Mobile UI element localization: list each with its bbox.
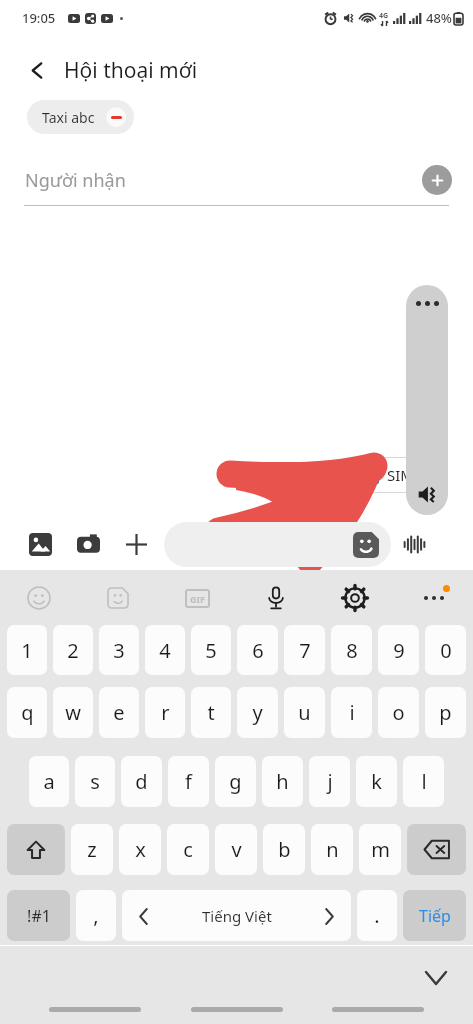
staticText: m (371, 836, 390, 863)
button[interactable]: l (403, 756, 444, 807)
staticText: 2 (67, 637, 79, 664)
staticText: e (113, 699, 125, 726)
button[interactable]: Edge panel (406, 285, 448, 515)
staticText: c (183, 836, 193, 863)
button[interactable]: Voice input (259, 581, 293, 615)
button[interactable]: Camera (70, 526, 106, 562)
button[interactable]: 5 (191, 625, 231, 675)
button[interactable]: e (99, 687, 139, 738)
button[interactable]: u (284, 687, 325, 738)
button[interactable]: 3 (99, 625, 139, 675)
staticText: 7 (299, 637, 311, 664)
staticText: t (207, 699, 215, 726)
button[interactable]: v (215, 824, 257, 875)
button[interactable]: Voice message (397, 527, 431, 561)
button[interactable]: j (309, 756, 350, 807)
staticText: v (231, 836, 242, 863)
staticText: Tiếng Việt (202, 906, 272, 926)
staticText: 19:05 (22, 9, 56, 27)
button[interactable]: Tiếp (403, 890, 466, 941)
staticText: 48% (426, 9, 452, 27)
staticText: i (349, 699, 355, 726)
button[interactable]: x (119, 824, 161, 875)
button[interactable]: a (29, 756, 69, 807)
button[interactable]: Hide keyboard (419, 961, 453, 995)
staticText: 4G (379, 11, 389, 21)
button[interactable]: p (425, 687, 466, 738)
button[interactable]: Keyboard settings (338, 581, 372, 615)
button[interactable]: r (145, 687, 185, 738)
button[interactable]: g (215, 756, 256, 807)
staticText: Tiếp (419, 905, 451, 927)
button[interactable] (191, 1007, 283, 1012)
button[interactable]: 6 (237, 625, 278, 675)
button[interactable]: q (7, 687, 47, 738)
button[interactable]: m (359, 824, 401, 875)
staticText: 8 (346, 637, 358, 664)
button[interactable]: s (75, 756, 115, 807)
staticText: h (276, 768, 289, 795)
staticText: , (93, 902, 99, 929)
staticText: !#1 (27, 905, 51, 927)
button[interactable]: , (76, 890, 116, 941)
button[interactable]: . (357, 890, 397, 941)
button[interactable]: i (331, 687, 372, 738)
button[interactable]: 9 (378, 625, 419, 675)
staticText: r (161, 699, 170, 726)
button[interactable] (407, 824, 466, 875)
staticText: 5 (205, 637, 217, 664)
button[interactable]: b (263, 824, 305, 875)
button[interactable]: 1 (7, 625, 47, 675)
button[interactable] (7, 824, 65, 875)
button[interactable]: 0 (425, 625, 466, 675)
button[interactable]: GIF (180, 581, 214, 615)
staticText: y (252, 699, 263, 726)
button[interactable] (332, 1007, 424, 1012)
button[interactable]: f (168, 756, 209, 807)
staticText: g (229, 768, 242, 795)
button[interactable]: Back (20, 53, 54, 87)
staticText: x (135, 836, 146, 863)
button[interactable]: 2 (53, 625, 93, 675)
button[interactable]: w (53, 687, 93, 738)
staticText: f (185, 768, 192, 795)
staticText: 6 (252, 637, 264, 664)
button[interactable]: h (262, 756, 303, 807)
button[interactable]: Stickers (164, 522, 391, 567)
button[interactable]: o (378, 687, 419, 738)
staticText: a (43, 768, 55, 795)
button[interactable]: d (121, 756, 162, 807)
button[interactable] (49, 1007, 141, 1012)
button[interactable]: t (191, 687, 231, 738)
button[interactable]: Stickers (353, 532, 379, 558)
button[interactable]: Gallery (22, 526, 58, 562)
button[interactable]: z (71, 824, 113, 875)
staticText: 3 (113, 637, 125, 664)
button[interactable]: More attachments (118, 526, 154, 562)
button[interactable]: c (167, 824, 209, 875)
button[interactable]: Emoji (22, 581, 56, 615)
staticText: Hội thoại mới (64, 56, 198, 85)
staticText: z (87, 836, 97, 863)
button[interactable]: 1 (348, 457, 441, 493)
button[interactable]: Tiếng Việt (122, 890, 351, 941)
staticText: . (374, 902, 380, 929)
button[interactable]: !#1 (7, 890, 70, 941)
button[interactable]: y (237, 687, 278, 738)
staticText: d (135, 768, 148, 795)
staticText: Người nhận (25, 168, 126, 193)
staticText: 9 (393, 637, 405, 664)
button[interactable]: Taxi abc (27, 100, 134, 134)
button[interactable]: n (311, 824, 353, 875)
button[interactable]: k (356, 756, 397, 807)
button[interactable]: Sticker (101, 581, 135, 615)
button[interactable]: Add recipient (422, 165, 452, 195)
button[interactable]: 8 (331, 625, 372, 675)
button[interactable]: 4 (145, 625, 185, 675)
button[interactable]: 7 (284, 625, 325, 675)
staticText: o (392, 699, 405, 726)
button[interactable]: More options (417, 581, 451, 615)
staticText: 1 (21, 637, 33, 664)
staticText: Taxi abc (42, 108, 95, 127)
